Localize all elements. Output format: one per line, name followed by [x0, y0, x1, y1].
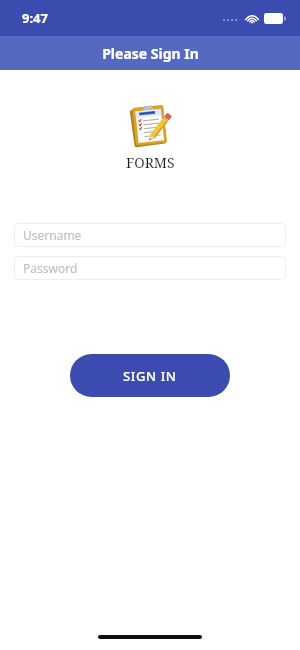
staticText: FORMS [126, 153, 175, 172]
button[interactable]: Password [14, 256, 286, 280]
staticText: Username [23, 227, 82, 243]
button[interactable]: Username [14, 223, 286, 247]
button[interactable]: SIGN IN [70, 354, 230, 397]
staticText: SIGN IN [123, 367, 177, 385]
staticText: 9:47 [22, 9, 48, 27]
staticText: Password [23, 260, 78, 276]
staticText: Please Sign In [102, 44, 199, 63]
